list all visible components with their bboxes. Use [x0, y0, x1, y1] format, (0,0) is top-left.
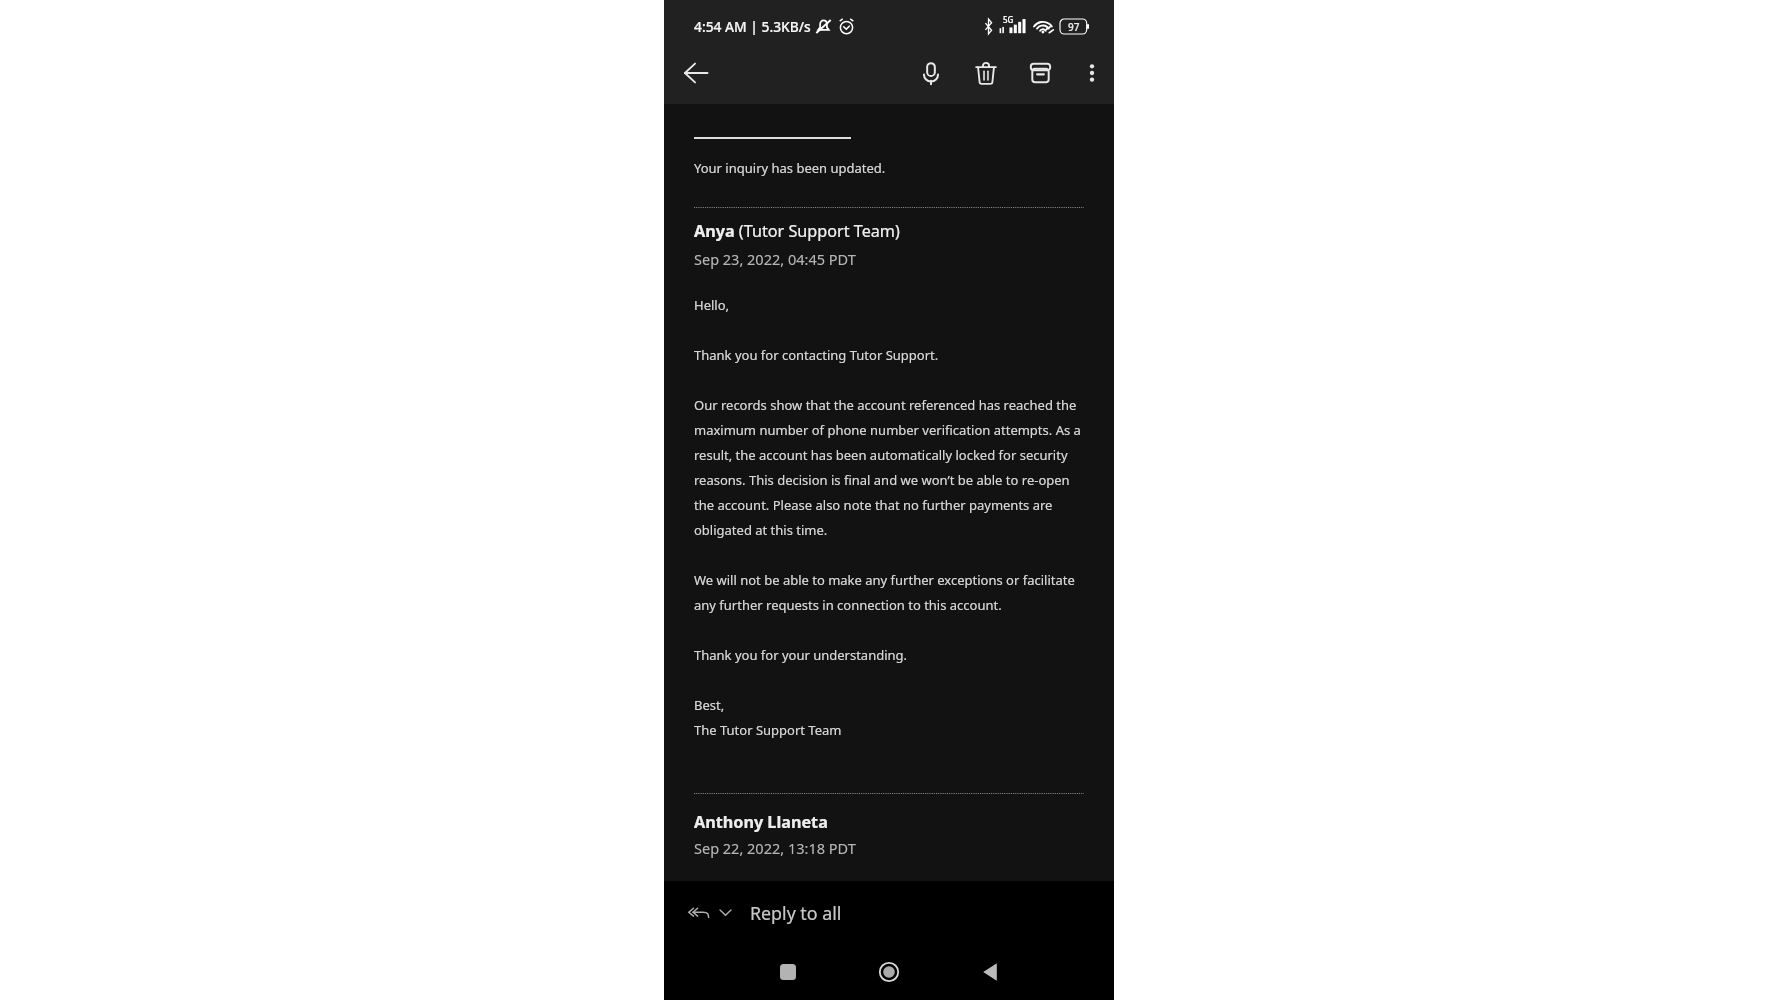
staticText: Anya (Tutor Support Team) — [694, 220, 900, 242]
button[interactable]: Archive — [1013, 47, 1068, 99]
button[interactable]: Home — [861, 944, 917, 1000]
button[interactable]: Recent apps — [760, 944, 816, 1000]
staticText: Your inquiry has been updated. — [694, 159, 886, 177]
staticText: Anthony Llaneta — [694, 811, 828, 833]
staticText: Reply to all — [750, 901, 842, 925]
button[interactable]: Reply to all — [664, 881, 1114, 944]
button[interactable]: Voice — [903, 47, 958, 99]
button[interactable]: More options — [1068, 47, 1116, 99]
button[interactable]: Delete — [958, 47, 1013, 99]
button[interactable]: Back — [962, 944, 1018, 1000]
staticText: 4:54 AM | 5.3KB/s — [694, 17, 811, 36]
button[interactable]: Back — [668, 47, 724, 99]
staticText: 97 — [1068, 20, 1080, 34]
staticText: 5G — [1003, 14, 1014, 25]
staticText: Sep 23, 2022, 04:45 PDT — [694, 249, 856, 269]
staticText: Sep 22, 2022, 13:18 PDT — [694, 838, 856, 858]
staticText: Hello, Thank you for contacting Tutor Su… — [694, 296, 1084, 739]
